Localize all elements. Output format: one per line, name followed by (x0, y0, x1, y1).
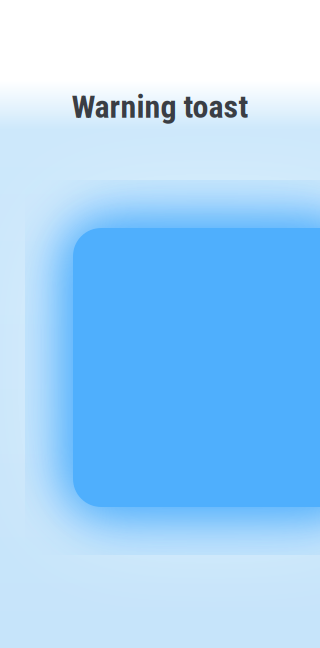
staticText: Warning toast (71, 88, 248, 125)
